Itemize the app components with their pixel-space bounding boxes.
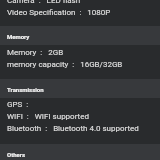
staticText: Camera : LED flash	[7, 0, 81, 4]
button[interactable]: GPS :	[0, 96, 160, 108]
staticText: Video Specification : 1080P	[7, 8, 111, 16]
staticText: WIFI : WIFI supported	[7, 112, 89, 120]
button[interactable]: Video Specification : 1080P	[0, 4, 160, 16]
button[interactable]: Others	[0, 144, 160, 160]
button[interactable]: Camera : LED flash	[0, 0, 160, 4]
button[interactable]: Memory	[0, 26, 160, 45]
staticText: Bluetooth : Bluetooth 4.0 supported	[7, 124, 139, 132]
button[interactable]: memory capacity : 16GB/32GB	[0, 56, 160, 68]
button[interactable]: WIFI : WIFI supported	[0, 108, 160, 120]
staticText: memory capacity : 16GB/32GB	[7, 60, 123, 68]
staticText: GPS :	[7, 100, 29, 108]
button[interactable]: Memory : 2GB	[0, 44, 160, 56]
staticText: Others	[7, 151, 26, 158]
staticText: Memory : 2GB	[7, 48, 64, 56]
staticText: Memory	[7, 33, 30, 40]
button[interactable]: Transmission	[0, 79, 160, 98]
button[interactable]: Bluetooth : Bluetooth 4.0 supported	[0, 120, 160, 132]
staticText: Transmission	[7, 86, 44, 93]
